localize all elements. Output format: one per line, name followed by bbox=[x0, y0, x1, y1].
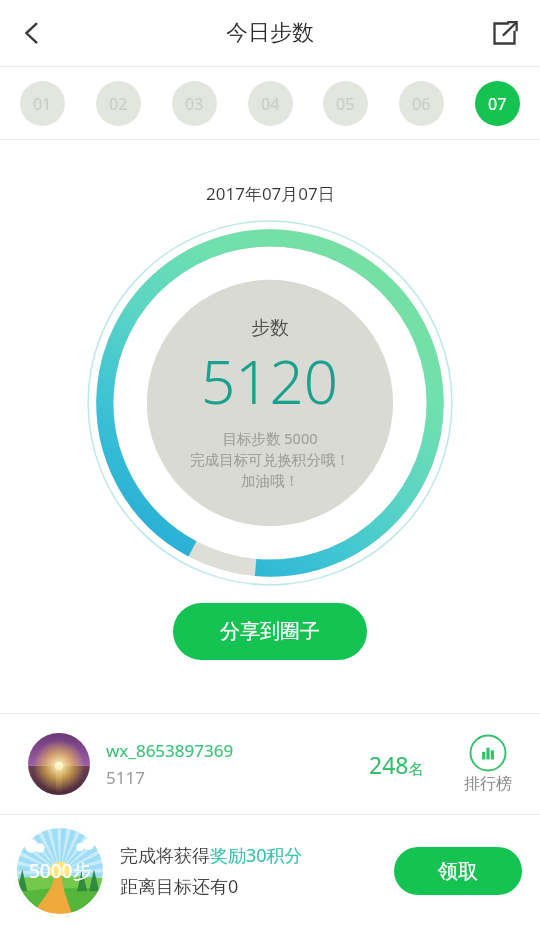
staticText: 5117 bbox=[106, 766, 145, 789]
button[interactable]: 03 bbox=[172, 81, 217, 126]
button[interactable]: 分享到圈子 bbox=[173, 603, 367, 660]
staticText: 距离目标还有0 bbox=[120, 874, 239, 899]
staticText: 5120 bbox=[201, 340, 339, 422]
staticText: 领取 bbox=[438, 859, 478, 884]
staticText: 完成将获得奖励30积分 bbox=[120, 843, 303, 868]
staticText: 排行榜 bbox=[464, 774, 512, 794]
staticText: 248名 bbox=[369, 749, 424, 780]
button[interactable]: 04 bbox=[248, 81, 293, 126]
staticText: 02 bbox=[109, 93, 128, 115]
button[interactable]: 05 bbox=[323, 81, 368, 126]
staticText: 03 bbox=[185, 93, 204, 115]
staticText: 06 bbox=[412, 93, 431, 115]
staticText: 5000步 bbox=[29, 858, 92, 884]
staticText: 目标步数 5000 完成目标可兑换积分哦！ 加油哦！ bbox=[190, 428, 350, 490]
button[interactable]: wx_8653897369 bbox=[0, 714, 540, 814]
staticText: 步数 bbox=[251, 316, 289, 340]
staticText: 07 bbox=[488, 93, 507, 115]
staticText: 分享到圈子 bbox=[220, 619, 320, 644]
button[interactable]: Share bbox=[478, 7, 530, 59]
button[interactable]: Back bbox=[4, 5, 60, 61]
staticText: 2017年07月07日 bbox=[206, 182, 335, 205]
button[interactable]: 06 bbox=[399, 81, 444, 126]
button[interactable]: 排行榜 bbox=[464, 734, 512, 794]
staticText: wx_8653897369 bbox=[106, 739, 234, 762]
button[interactable]: 02 bbox=[96, 81, 141, 126]
button[interactable]: 领取 bbox=[394, 847, 522, 895]
staticText: 04 bbox=[261, 93, 280, 115]
staticText: 05 bbox=[336, 93, 355, 115]
staticText: 今日步数 bbox=[226, 19, 314, 47]
staticText: 01 bbox=[33, 93, 52, 115]
button[interactable]: 01 bbox=[20, 81, 65, 126]
button[interactable]: 07 bbox=[475, 81, 520, 126]
